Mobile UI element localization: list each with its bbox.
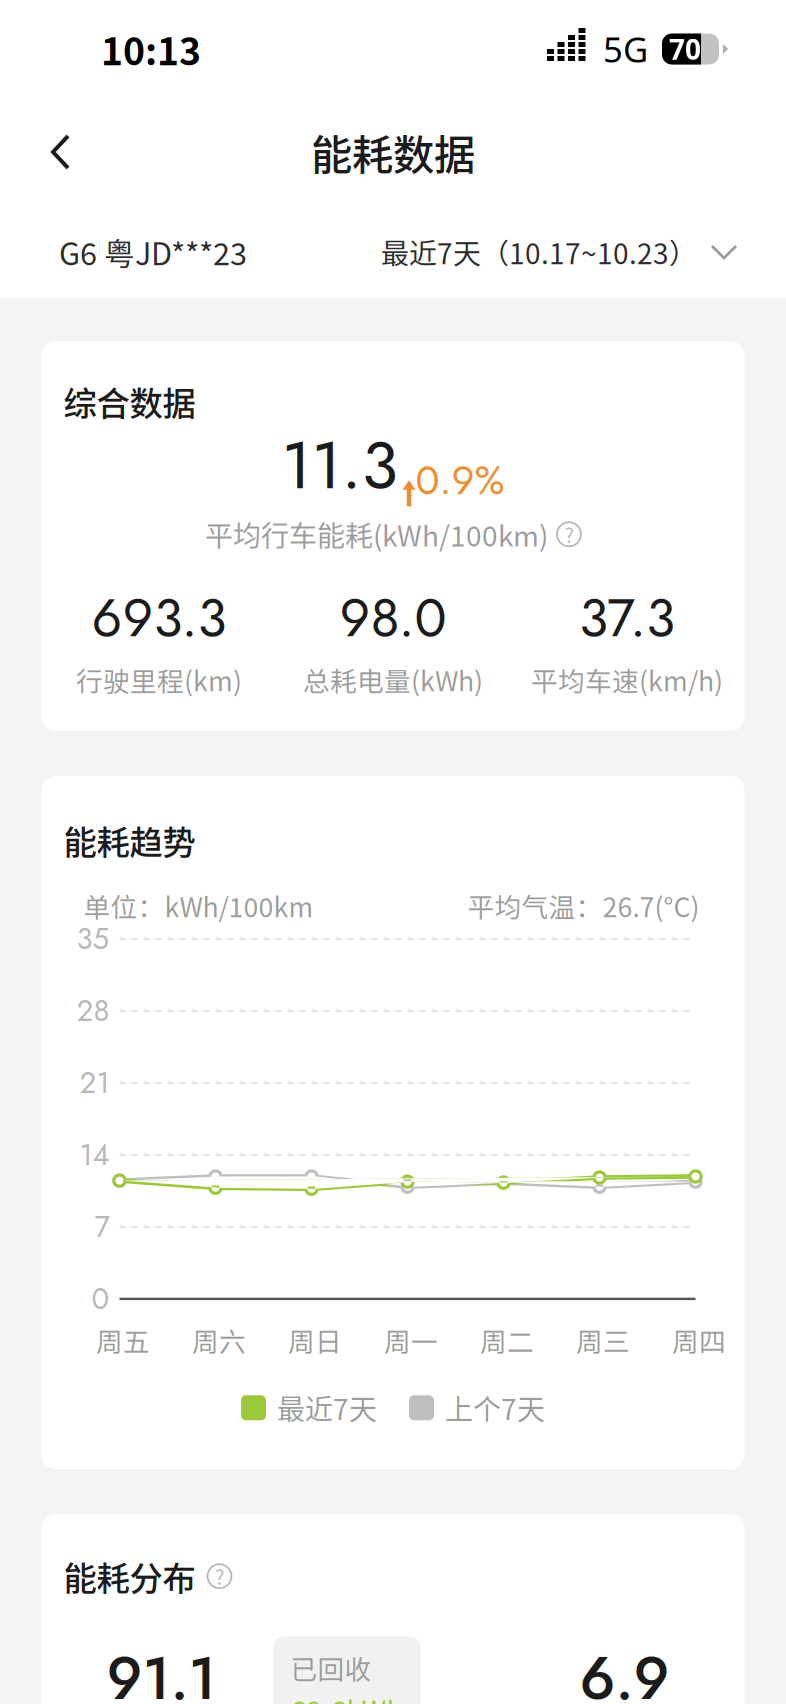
staticText: 35 <box>76 918 109 960</box>
staticText: 最近7天 <box>277 1387 377 1428</box>
staticText: 5G <box>603 25 648 73</box>
staticText: 行驶里程(km) <box>76 660 242 699</box>
button[interactable]: 最近7天（10.17~10.23） <box>381 214 786 290</box>
staticText: 能耗分布 <box>63 1552 195 1600</box>
staticText: 10:13 <box>101 22 201 76</box>
staticText: 最近7天（10.17~10.23） <box>381 232 697 272</box>
staticText: 14 <box>79 1134 109 1176</box>
staticText: 7 <box>94 1206 109 1248</box>
staticText: 综合数据 <box>63 377 195 425</box>
staticText: 0 <box>91 1278 109 1320</box>
button[interactable]: Back <box>0 117 104 187</box>
staticText: 能耗数据 <box>311 122 475 182</box>
staticText: 6.9 <box>579 1636 669 1704</box>
staticText: 单位：kWh/100km <box>83 886 313 925</box>
staticText: 平均车速(km/h) <box>531 660 723 699</box>
staticText: 能耗趋势 <box>63 816 195 864</box>
staticText: 21 <box>79 1062 109 1104</box>
staticText: ? <box>215 1562 224 1590</box>
staticText: 周五 <box>96 1321 150 1359</box>
staticText: 98.0 <box>339 579 446 656</box>
staticText: 周日 <box>288 1321 342 1359</box>
staticText: 已回收 <box>290 1648 371 1687</box>
staticText: 0.9% <box>415 451 504 509</box>
staticText: 周一 <box>384 1321 438 1359</box>
staticText: 总耗电量(kWh) <box>303 660 483 699</box>
staticText: 693.3 <box>91 579 226 656</box>
staticText: 上个7天 <box>445 1387 545 1428</box>
staticText: 37.3 <box>579 579 675 656</box>
staticText: 周三 <box>576 1321 630 1359</box>
staticText: 91.1 <box>106 1636 216 1704</box>
staticText: 周二 <box>480 1321 534 1359</box>
staticText: G6 粤JD***23 <box>59 230 247 274</box>
staticText: 周六 <box>192 1321 246 1359</box>
staticText: 70 <box>669 30 701 68</box>
staticText: 28 <box>76 990 109 1032</box>
staticText: 平均行车能耗(kWh/100km) <box>205 514 548 554</box>
staticText: 11.3 <box>281 417 397 513</box>
staticText: 平均气温：26.7(°C) <box>467 886 699 925</box>
staticText: 周四 <box>672 1321 726 1359</box>
staticText: ? <box>564 520 573 549</box>
staticText: 69.6kWh <box>290 1689 403 1704</box>
